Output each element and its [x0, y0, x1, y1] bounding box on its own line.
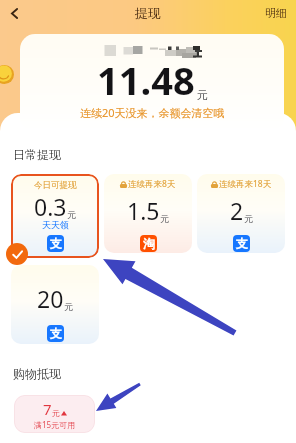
- staticText: 元: [67, 209, 76, 220]
- staticText: 7: [43, 399, 52, 419]
- staticText: 元: [197, 88, 208, 102]
- staticText: 支: [50, 326, 62, 341]
- button[interactable]: 20: [11, 265, 99, 344]
- button[interactable]: 7: [14, 395, 95, 433]
- staticText: 20: [37, 283, 64, 314]
- staticText: 连续再来8天: [128, 178, 176, 190]
- button[interactable]: 连续再来18天: [197, 174, 285, 253]
- staticText: 连续20天没来，余额会清空哦: [80, 105, 225, 120]
- staticText: 明细: [265, 6, 287, 20]
- staticText: 提现: [135, 5, 161, 21]
- staticText: 今日可提现: [34, 180, 77, 191]
- staticText: 元: [64, 301, 73, 312]
- staticText: 支: [50, 236, 62, 251]
- button[interactable]: 明细: [259, 2, 296, 24]
- staticText: 1.5: [127, 195, 160, 226]
- staticText: 日常提现: [13, 147, 61, 162]
- button[interactable]: 连续再来8天: [104, 174, 192, 253]
- button[interactable]: Selected: [6, 243, 28, 265]
- button[interactable]: 11.48: [20, 34, 284, 131]
- staticText: 支: [236, 236, 248, 251]
- staticText: 连续再来18天: [219, 178, 272, 190]
- staticText: 天天领: [42, 219, 69, 230]
- button[interactable]: 今日可提现: [11, 174, 99, 258]
- staticText: 2: [230, 195, 244, 226]
- staticText: 购物抵现: [13, 366, 61, 381]
- staticText: 0.3: [34, 191, 67, 222]
- staticText: 淘: [143, 236, 155, 251]
- staticText: 11.48: [97, 54, 195, 106]
- button[interactable]: Back: [3, 2, 25, 24]
- staticText: 满15元可用: [34, 419, 76, 430]
- staticText: 元: [160, 213, 169, 224]
- staticText: 元: [244, 213, 253, 224]
- staticText: 元: [52, 408, 60, 418]
